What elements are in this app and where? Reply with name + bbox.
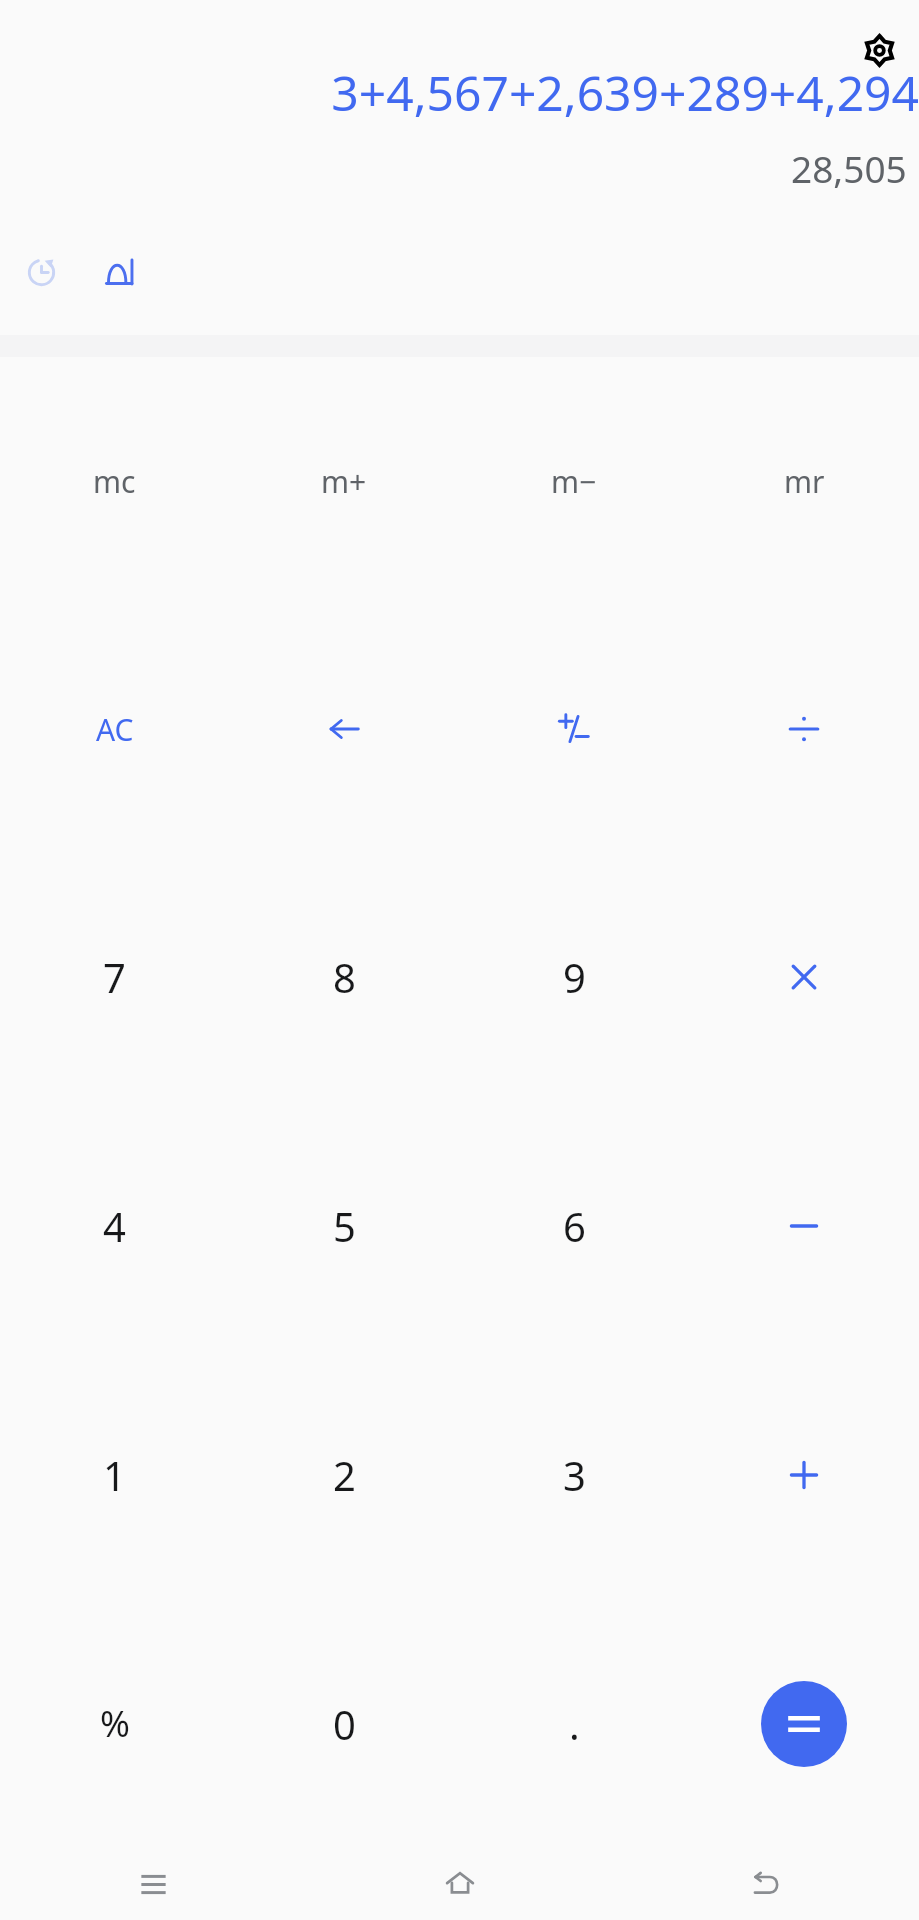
- button[interactable]: Divide: [689, 605, 919, 853]
- button[interactable]: mc: [0, 357, 229, 605]
- staticText: m+: [321, 461, 367, 502]
- staticText: 7: [103, 950, 126, 1004]
- staticText: 0: [333, 1697, 356, 1751]
- button[interactable]: 8: [229, 853, 459, 1101]
- staticText: 1: [103, 1448, 126, 1502]
- button[interactable]: 28,505: [0, 143, 907, 191]
- button[interactable]: Backspace: [229, 605, 459, 853]
- button[interactable]: 5: [229, 1101, 459, 1350]
- button[interactable]: 9: [459, 853, 689, 1101]
- button[interactable]: Multiply: [689, 853, 919, 1101]
- button[interactable]: Home: [307, 1848, 613, 1920]
- staticText: 4: [103, 1199, 126, 1253]
- staticText: 9: [563, 950, 586, 1004]
- staticText: .: [569, 1697, 580, 1751]
- button[interactable]: Equals: [761, 1681, 847, 1767]
- button[interactable]: 2: [229, 1350, 459, 1599]
- button[interactable]: Plus minus: [459, 605, 689, 853]
- button[interactable]: 6: [459, 1101, 689, 1350]
- staticText: 8: [333, 950, 356, 1004]
- staticText: 3+4,567+2,639+289+4,294: [331, 60, 919, 120]
- button[interactable]: 1: [0, 1350, 229, 1599]
- button[interactable]: mr: [689, 357, 919, 605]
- button[interactable]: m+: [229, 357, 459, 605]
- button[interactable]: 0: [229, 1599, 459, 1848]
- button[interactable]: .: [459, 1599, 689, 1848]
- button[interactable]: 7: [0, 853, 229, 1101]
- button[interactable]: 3+4,567+2,639+289+4,294: [0, 60, 919, 120]
- button[interactable]: Settings: [851, 22, 907, 78]
- staticText: AC: [96, 709, 134, 750]
- button[interactable]: Recents: [0, 1848, 307, 1920]
- button[interactable]: 3: [459, 1350, 689, 1599]
- button[interactable]: 4: [0, 1101, 229, 1350]
- button[interactable]: History: [14, 245, 68, 299]
- staticText: 28,505: [791, 143, 907, 191]
- button[interactable]: Minus: [689, 1101, 919, 1350]
- staticText: 5: [333, 1199, 356, 1253]
- staticText: 6: [563, 1199, 586, 1253]
- staticText: 2: [333, 1448, 356, 1502]
- staticText: 3: [563, 1448, 586, 1502]
- staticText: m−: [551, 461, 597, 502]
- button[interactable]: m−: [459, 357, 689, 605]
- button[interactable]: %: [0, 1599, 229, 1848]
- staticText: mc: [93, 461, 136, 502]
- button[interactable]: Graph: [92, 245, 146, 299]
- button[interactable]: Back: [613, 1848, 919, 1920]
- button[interactable]: Plus: [689, 1350, 919, 1599]
- staticText: %: [100, 1699, 130, 1748]
- button[interactable]: AC: [0, 605, 229, 853]
- staticText: mr: [784, 461, 825, 502]
